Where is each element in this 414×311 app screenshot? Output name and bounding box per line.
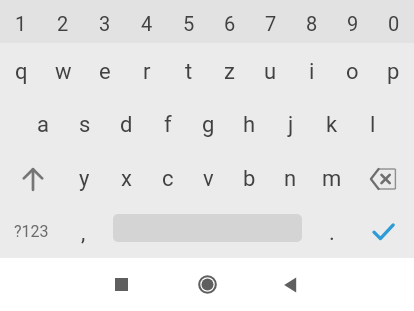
staticText: 0 (388, 12, 400, 35)
button[interactable]: d (106, 96, 147, 150)
button[interactable]: z (209, 43, 250, 96)
staticText: d (120, 112, 133, 138)
staticText: p (387, 59, 400, 85)
button[interactable]: q (0, 43, 42, 96)
staticText: m (322, 166, 342, 192)
staticText: 5 (183, 12, 195, 35)
button[interactable]: 4 (126, 0, 168, 43)
staticText: 3 (99, 12, 111, 35)
button[interactable] (352, 150, 414, 204)
button[interactable]: u (250, 43, 291, 96)
button[interactable]: f (147, 96, 188, 150)
staticText: h (243, 112, 256, 138)
staticText: j (288, 112, 294, 138)
staticText: x (121, 166, 132, 192)
button[interactable]: e (84, 43, 126, 96)
staticText: s (79, 112, 91, 138)
button[interactable] (267, 258, 315, 311)
button[interactable] (183, 258, 231, 311)
staticText: b (243, 166, 256, 192)
staticText: 7 (265, 12, 277, 35)
button[interactable]: h (229, 96, 270, 150)
button[interactable]: y (63, 150, 105, 204)
staticText: r (143, 59, 151, 85)
button[interactable]: w (42, 43, 84, 96)
staticText: k (326, 112, 338, 138)
button[interactable]: g (188, 96, 229, 150)
button[interactable]: 5 (168, 0, 209, 43)
button[interactable]: b (229, 150, 270, 204)
staticText: e (99, 59, 111, 85)
button[interactable]: 7 (250, 0, 291, 43)
staticText: c (162, 166, 174, 192)
staticText: u (264, 59, 277, 85)
button[interactable] (104, 204, 311, 258)
button[interactable]: t (168, 43, 209, 96)
staticText: ?123 (14, 222, 49, 241)
button[interactable]: j (270, 96, 311, 150)
button[interactable]: o (332, 43, 373, 96)
button[interactable]: ?123 (0, 204, 63, 258)
staticText: v (203, 166, 214, 192)
staticText: y (79, 166, 90, 192)
staticText: 8 (306, 12, 318, 35)
staticText: n (284, 166, 297, 192)
button[interactable]: 8 (291, 0, 332, 43)
button[interactable]: l (352, 96, 393, 150)
button[interactable] (0, 150, 63, 204)
staticText: o (346, 59, 359, 85)
button[interactable]: i (291, 43, 332, 96)
button[interactable]: . (311, 204, 352, 258)
button[interactable]: a (22, 96, 64, 150)
button[interactable]: p (373, 43, 414, 96)
staticText: a (37, 112, 49, 138)
button[interactable]: 0 (373, 0, 414, 43)
staticText: l (370, 112, 376, 138)
staticText: 4 (141, 12, 153, 35)
button[interactable]: 9 (332, 0, 373, 43)
button[interactable]: n (270, 150, 311, 204)
button[interactable]: , (63, 204, 104, 258)
staticText: t (185, 59, 193, 85)
button[interactable]: k (311, 96, 352, 150)
staticText: w (55, 59, 72, 85)
staticText: 9 (347, 12, 359, 35)
staticText: z (224, 59, 235, 85)
button[interactable]: 2 (42, 0, 84, 43)
staticText: f (164, 112, 172, 138)
button[interactable]: s (64, 96, 106, 150)
button[interactable]: 3 (84, 0, 126, 43)
staticText: 6 (224, 12, 236, 35)
button[interactable]: m (311, 150, 352, 204)
button[interactable]: 6 (209, 0, 250, 43)
staticText: , (81, 220, 86, 246)
staticText: i (309, 59, 315, 85)
button[interactable] (352, 204, 414, 258)
staticText: g (202, 112, 215, 138)
staticText: 2 (57, 12, 69, 35)
button[interactable]: v (188, 150, 229, 204)
button[interactable]: x (105, 150, 147, 204)
button[interactable] (97, 258, 145, 311)
staticText: q (15, 59, 28, 85)
button[interactable]: 1 (0, 0, 42, 43)
button[interactable]: c (147, 150, 188, 204)
staticText: 1 (15, 12, 27, 35)
staticText: . (329, 220, 335, 246)
button[interactable]: r (126, 43, 168, 96)
